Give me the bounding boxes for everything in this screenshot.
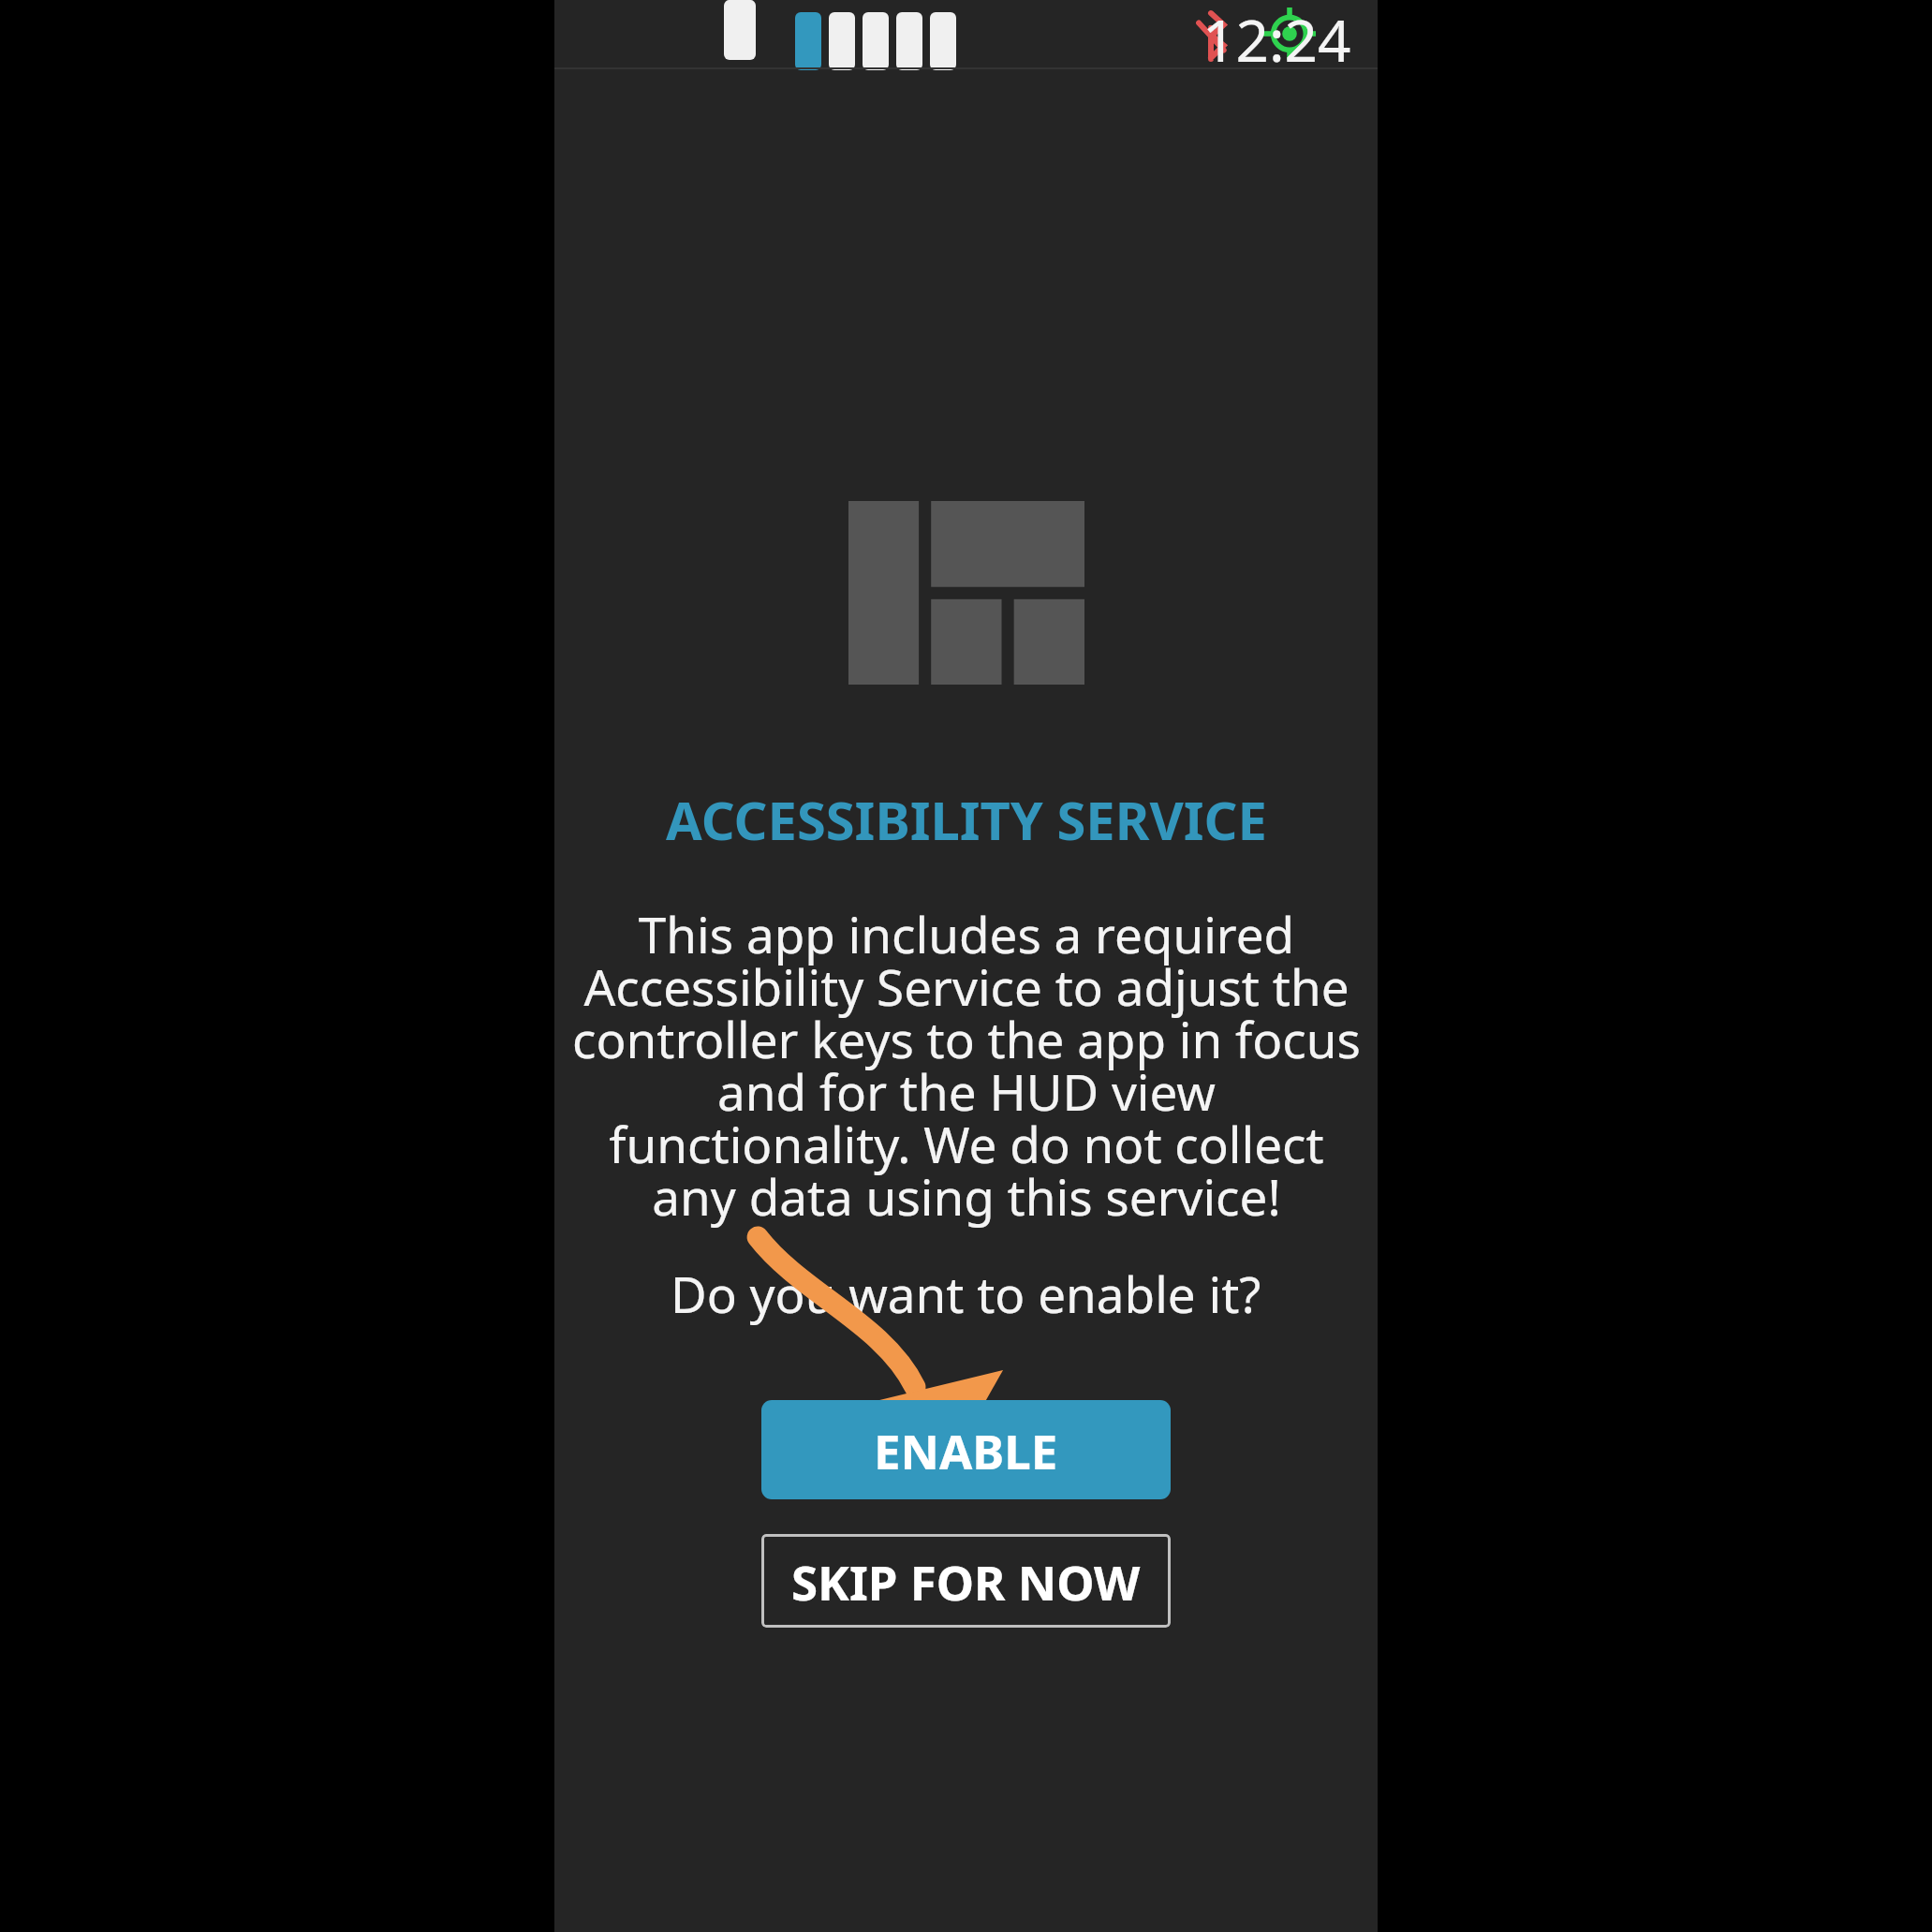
button[interactable]: ENABLE — [761, 1400, 1171, 1499]
other: Location on — [1263, 7, 1316, 60]
staticText: This app includes a required Accessibili… — [569, 900, 1364, 1230]
staticText: Do you want to enable it? — [671, 1260, 1261, 1327]
staticText: ENABLE — [874, 1418, 1058, 1482]
staticText: 12:24 — [1202, 0, 1351, 67]
staticText: SKIP FOR NOW — [791, 1549, 1141, 1614]
staticText: ACCESSIBILITY SERVICE — [666, 784, 1267, 855]
button[interactable]: SKIP FOR NOW — [761, 1534, 1171, 1628]
other: Bluetooth off — [1193, 11, 1229, 60]
